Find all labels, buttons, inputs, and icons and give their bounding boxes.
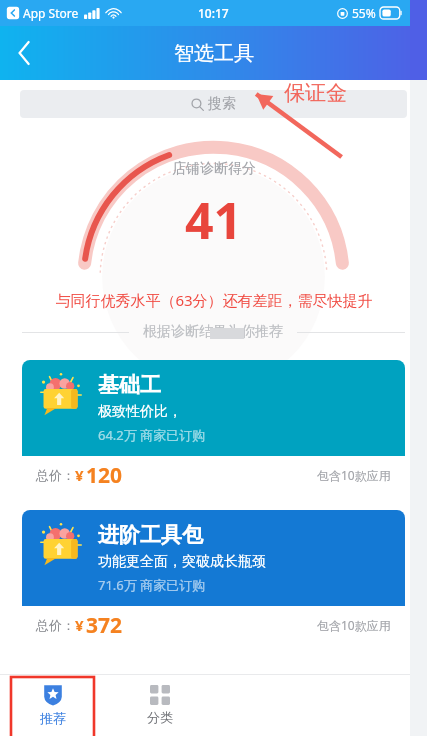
- button[interactable]: 分类: [106, 674, 213, 736]
- staticText: 372: [86, 611, 123, 640]
- staticText: 根据诊断结果为你推荐: [143, 323, 283, 341]
- staticText: 总价：: [36, 467, 75, 483]
- staticText: 10:17: [198, 5, 229, 21]
- staticText: 功能更全面，突破成长瓶颈: [98, 553, 266, 571]
- staticText: 进阶工具包: [98, 522, 203, 548]
- staticText: 智选工具: [174, 41, 254, 66]
- staticText: ¥: [75, 615, 84, 635]
- staticText: ¥: [75, 465, 84, 485]
- staticText: 店铺诊断得分: [172, 160, 256, 178]
- staticText: 包含10款应用: [317, 617, 391, 633]
- staticText: 搜索: [208, 95, 236, 113]
- staticText: 总价：: [36, 617, 75, 633]
- staticText: 55%: [352, 5, 376, 21]
- staticText: 41: [185, 186, 243, 254]
- button[interactable]: 搜索: [20, 90, 407, 118]
- staticText: 与同行优秀水平（63分）还有差距，需尽快提升: [55, 290, 373, 310]
- staticText: 包含10款应用: [317, 467, 391, 483]
- staticText: 极致性价比，: [98, 403, 182, 421]
- button[interactable]: Back: [0, 26, 48, 80]
- staticText: 120: [86, 461, 123, 490]
- staticText: App Store: [23, 5, 79, 21]
- button[interactable]: 基础工: [22, 360, 405, 494]
- button[interactable]: 推荐: [0, 674, 106, 736]
- staticText: 推荐: [40, 710, 66, 726]
- button[interactable]: 进阶工具包: [22, 510, 405, 644]
- staticText: 分类: [147, 709, 173, 725]
- staticText: 71.6万 商家已订购: [98, 576, 206, 594]
- staticText: 基础工: [98, 372, 161, 398]
- staticText: 保证金: [284, 80, 347, 106]
- staticText: 64.2万 商家已订购: [98, 426, 206, 444]
